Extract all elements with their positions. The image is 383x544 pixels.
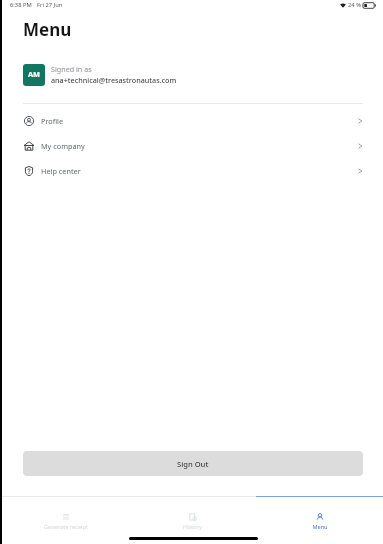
button[interactable]: History bbox=[129, 497, 256, 532]
staticText: 6:38 PM bbox=[10, 1, 32, 9]
staticText: Profile bbox=[41, 116, 64, 126]
staticText: Sign Out bbox=[177, 459, 209, 469]
staticText: ana+technical@tresastronautas.com bbox=[51, 75, 177, 85]
staticText: 24 % bbox=[348, 1, 361, 9]
staticText: Signed in as bbox=[51, 64, 92, 74]
staticText: History bbox=[183, 523, 202, 531]
staticText: Generate receipt bbox=[44, 523, 88, 531]
staticText: Menu bbox=[312, 523, 328, 531]
button[interactable]: Menu bbox=[256, 497, 383, 532]
staticText: My company bbox=[41, 141, 85, 151]
staticText: Help center bbox=[41, 166, 81, 176]
button[interactable]: Profile bbox=[0, 108, 383, 133]
staticText: AM bbox=[28, 69, 41, 79]
staticText: Fri 27 Jun bbox=[37, 1, 63, 9]
button[interactable]: Help center bbox=[0, 158, 383, 183]
button[interactable]: Sign Out bbox=[23, 451, 363, 476]
button[interactable]: Generate receipt bbox=[2, 497, 129, 532]
staticText: Menu bbox=[23, 18, 72, 41]
button[interactable]: My company bbox=[0, 133, 383, 158]
